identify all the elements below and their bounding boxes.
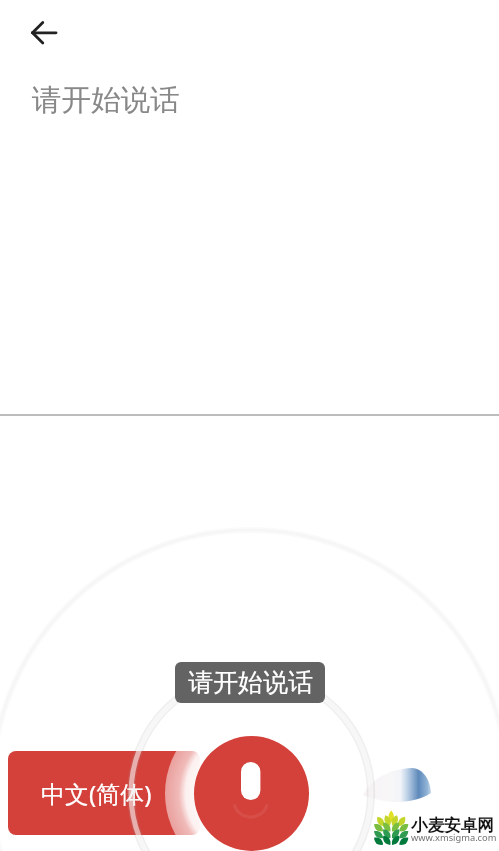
button[interactable]: 中文(简体) bbox=[8, 751, 200, 835]
staticText: www.xmsigma.com bbox=[411, 831, 497, 844]
staticText: 小麦安卓网 bbox=[411, 815, 494, 836]
button[interactable]: Microphone bbox=[194, 736, 309, 851]
staticText: 请开始说话 bbox=[32, 82, 180, 119]
button[interactable]: Back bbox=[20, 10, 68, 54]
staticText: 请开始说话 bbox=[188, 667, 313, 698]
button[interactable]: 请开始说话 bbox=[175, 662, 325, 703]
staticText: 中文(简体) bbox=[41, 777, 152, 810]
